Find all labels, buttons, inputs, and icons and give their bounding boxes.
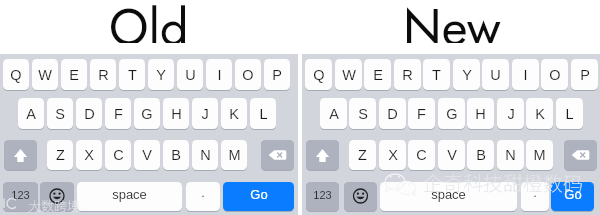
button[interactable]: G <box>134 98 160 129</box>
button[interactable]: space <box>380 182 517 211</box>
staticText: X <box>388 147 398 163</box>
button[interactable]: K <box>526 98 553 129</box>
button[interactable]: L <box>250 98 276 129</box>
button[interactable]: O <box>541 59 568 90</box>
button[interactable]: Z <box>47 140 73 170</box>
button[interactable]: H <box>163 98 189 129</box>
button[interactable]: S <box>349 98 376 129</box>
button[interactable]: . <box>186 182 220 211</box>
button[interactable]: Q <box>3 59 29 90</box>
staticText: Y <box>156 67 166 83</box>
staticText: S <box>55 106 65 122</box>
button[interactable]: H <box>467 98 494 129</box>
staticText: New <box>403 0 501 43</box>
button[interactable]: Emoji keyboard <box>344 182 377 211</box>
button[interactable]: Go <box>223 182 294 211</box>
button[interactable]: X <box>76 140 102 170</box>
button[interactable]: R <box>394 59 421 90</box>
button[interactable]: C <box>408 140 435 170</box>
button[interactable]: Z <box>349 140 376 170</box>
staticText: U <box>185 67 196 83</box>
button[interactable]: 123 <box>306 182 339 211</box>
staticText: S <box>358 106 368 122</box>
staticText: G <box>446 106 458 122</box>
staticText: . <box>533 185 537 200</box>
button[interactable]: F <box>408 98 435 129</box>
button[interactable]: Y <box>148 59 174 90</box>
button[interactable]: B <box>467 140 494 170</box>
staticText: Old <box>109 0 189 43</box>
button[interactable]: I <box>512 59 539 90</box>
staticText: V <box>142 147 152 163</box>
button[interactable]: O <box>235 59 261 90</box>
button[interactable]: Emoji keyboard <box>40 182 74 211</box>
staticText: O <box>549 67 561 83</box>
staticText: D <box>387 106 398 122</box>
button[interactable]: Go <box>551 182 594 211</box>
button[interactable]: G <box>438 98 465 129</box>
button[interactable]: T <box>119 59 145 90</box>
button[interactable]: S <box>47 98 73 129</box>
staticText: K <box>535 106 545 122</box>
staticText: E <box>69 67 79 83</box>
staticText: H <box>475 106 486 122</box>
staticText: I <box>523 67 528 83</box>
staticText: B <box>476 147 486 163</box>
button[interactable]: Y <box>453 59 480 90</box>
button[interactable]: X <box>379 140 406 170</box>
button[interactable]: K <box>221 98 247 129</box>
staticText: G <box>141 106 153 122</box>
staticText: 大数跨境 <box>28 196 81 215</box>
button[interactable]: 123 <box>3 182 38 211</box>
button[interactable]: N <box>497 140 524 170</box>
button[interactable]: Q <box>305 59 332 90</box>
staticText: J <box>201 106 209 122</box>
button[interactable]: R <box>90 59 116 90</box>
button[interactable]: I <box>206 59 232 90</box>
staticText: E <box>373 67 383 83</box>
button[interactable]: E <box>364 59 391 90</box>
button[interactable]: F <box>105 98 131 129</box>
button[interactable]: Shift <box>306 140 339 170</box>
button[interactable]: P <box>264 59 290 90</box>
button[interactable]: B <box>163 140 189 170</box>
button[interactable]: D <box>379 98 406 129</box>
staticText: Go <box>564 187 582 202</box>
button[interactable]: . <box>521 182 549 211</box>
staticText: M <box>533 147 546 163</box>
button[interactable]: U <box>177 59 203 90</box>
button[interactable]: E <box>61 59 87 90</box>
button[interactable]: A <box>18 98 44 129</box>
button[interactable]: Shift <box>4 140 37 170</box>
button[interactable]: T <box>423 59 450 90</box>
button[interactable]: V <box>438 140 465 170</box>
staticText: Go <box>250 187 268 202</box>
button[interactable]: D <box>76 98 102 129</box>
button[interactable]: Delete <box>564 140 597 170</box>
staticText: L <box>259 106 268 122</box>
button[interactable]: Delete <box>261 140 294 170</box>
staticText: H <box>171 106 182 122</box>
button[interactable]: U <box>482 59 509 90</box>
button[interactable]: N <box>192 140 218 170</box>
staticText: Q <box>313 67 325 83</box>
button[interactable]: space <box>77 182 182 211</box>
button[interactable]: L <box>556 98 583 129</box>
button[interactable]: W <box>335 59 362 90</box>
button[interactable]: V <box>134 140 160 170</box>
staticText: R <box>402 67 413 83</box>
staticText: B <box>171 147 181 163</box>
button[interactable]: C <box>105 140 131 170</box>
button[interactable]: J <box>497 98 524 129</box>
staticText: O <box>242 67 254 83</box>
button[interactable]: W <box>32 59 58 90</box>
button[interactable]: J <box>192 98 218 129</box>
button[interactable]: M <box>221 140 247 170</box>
staticText: 123 <box>11 189 30 201</box>
staticText: U <box>490 67 501 83</box>
button[interactable]: P <box>571 59 598 90</box>
staticText: N <box>200 147 211 163</box>
staticText: R <box>98 67 109 83</box>
button[interactable]: A <box>320 98 347 129</box>
button[interactable]: M <box>526 140 553 170</box>
